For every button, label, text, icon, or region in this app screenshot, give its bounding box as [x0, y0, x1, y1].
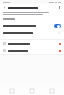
- button[interactable]: Home: [26, 87, 38, 95]
- button[interactable]: [0, 47, 64, 54]
- button[interactable]: More options: [58, 6, 61, 9]
- button[interactable]: [0, 40, 64, 47]
- button[interactable]: [0, 22, 64, 29]
- button[interactable]: Back: [0, 5, 64, 10]
- button[interactable]: Back: [6, 87, 18, 95]
- other: Back: [3, 6, 6, 9]
- button[interactable]: Recent apps: [46, 87, 58, 95]
- button[interactable]: [0, 29, 64, 36]
